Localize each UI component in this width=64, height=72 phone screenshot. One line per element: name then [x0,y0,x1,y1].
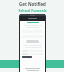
other: App bar [20,16,45,21]
button[interactable] [22,53,43,55]
staticText: School Funerals [18,8,47,13]
staticText: Get Notified [19,1,46,7]
button[interactable] [26,40,39,43]
button[interactable] [22,50,43,52]
button[interactable]: Stay [27,14,38,18]
button[interactable]: School Funerals [18,8,47,13]
staticText: Stay [29,14,36,18]
button[interactable] [22,56,32,58]
